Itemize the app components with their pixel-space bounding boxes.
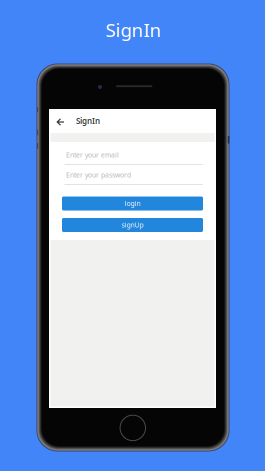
button[interactable]: signUp [62,218,203,232]
button[interactable]: login [62,196,203,210]
staticText: SignIn [76,116,100,126]
staticText: signUp [121,221,143,229]
staticText: SignIn [105,17,161,42]
button[interactable]: Back [54,109,66,133]
staticText: Enter your password [66,171,131,179]
staticText: Enter your email [66,151,119,159]
staticText: login [124,199,140,208]
